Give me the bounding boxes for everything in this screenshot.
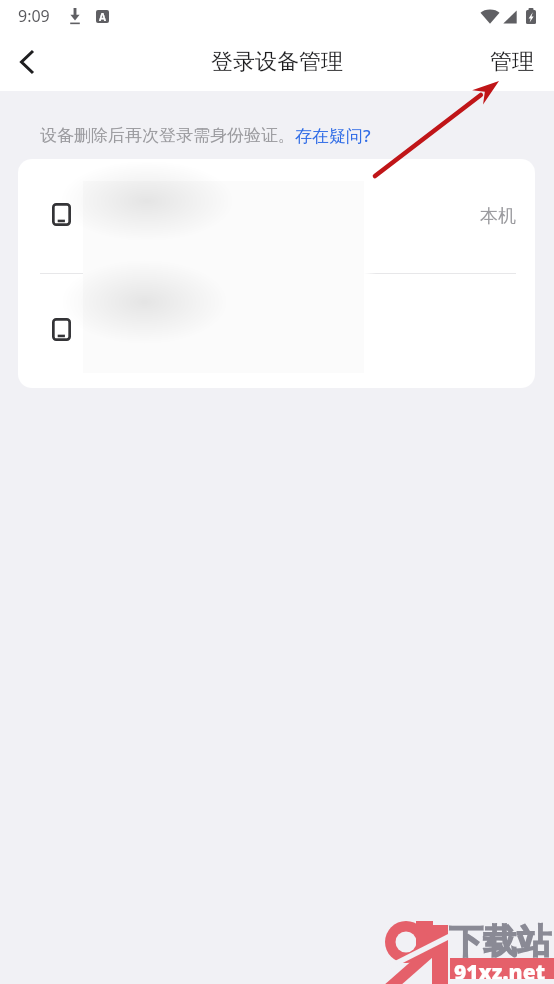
- staticText: 下载站: [449, 920, 551, 963]
- button[interactable]: Back: [0, 32, 54, 91]
- staticText: A: [99, 10, 106, 23]
- staticText: 管理: [490, 48, 534, 76]
- staticText: 本机: [480, 205, 516, 228]
- button[interactable]: 存在疑问?: [295, 124, 371, 147]
- staticText: 设备删除后再次登录需身份验证。: [40, 125, 295, 146]
- button[interactable]: 本机: [18, 159, 535, 273]
- staticText: 登录设备管理: [211, 48, 343, 76]
- staticText: 9:09: [18, 5, 50, 27]
- staticText: 存在疑问?: [295, 124, 371, 147]
- staticText: 91xz.net: [454, 958, 546, 979]
- button[interactable]: [18, 274, 535, 388]
- button[interactable]: 管理: [472, 32, 554, 91]
